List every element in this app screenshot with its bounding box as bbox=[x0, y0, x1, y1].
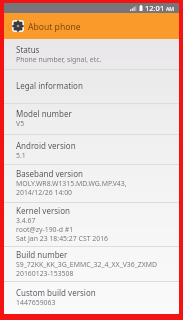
staticText: 5.1 bbox=[16, 151, 26, 160]
staticText: Kernel version bbox=[16, 205, 70, 216]
staticText: Build number bbox=[16, 249, 68, 260]
staticText: 20160123-153508 bbox=[16, 269, 74, 278]
staticText: root@zy-190-d #1 bbox=[16, 225, 74, 234]
staticText: 1447659063 bbox=[16, 298, 56, 307]
staticText: V5 bbox=[16, 119, 25, 128]
staticText: Android version bbox=[16, 140, 76, 151]
button[interactable]: Model number bbox=[4, 104, 179, 134]
button[interactable]: Baseband version bbox=[4, 165, 179, 202]
staticText: 3.4.67 bbox=[16, 216, 36, 225]
staticText: Status bbox=[16, 44, 40, 55]
staticText: Sat Jan 23 18:45:27 CST 2016 bbox=[16, 234, 109, 243]
staticText: Model number bbox=[16, 108, 72, 119]
button[interactable]: Legal information bbox=[4, 70, 179, 103]
staticText: Custom build version bbox=[16, 287, 96, 298]
button[interactable]: Kernel version bbox=[4, 203, 179, 246]
staticText: 12:01 bbox=[145, 3, 165, 13]
staticText: MOLY.WR8.W1315.MD.WG.MP.V43, bbox=[16, 179, 127, 188]
button[interactable]: Back bbox=[4, 13, 12, 39]
staticText: AM bbox=[166, 5, 175, 12]
staticText: 2014/12/26 14:00 bbox=[16, 188, 73, 197]
button[interactable]: Android version bbox=[4, 135, 179, 164]
button[interactable]: Status bbox=[4, 39, 179, 69]
button[interactable]: Custom build version bbox=[4, 282, 179, 313]
staticText: About phone bbox=[28, 21, 81, 33]
staticText: Phone number, signal, etc. bbox=[16, 55, 102, 64]
staticText: Legal information bbox=[16, 80, 83, 91]
staticText: Baseband version bbox=[16, 168, 83, 179]
button[interactable]: Build number bbox=[4, 247, 179, 281]
staticText: S9_72KK_KK_3G_EMMC_32_4_XX_V36_ZXMD bbox=[16, 260, 158, 269]
